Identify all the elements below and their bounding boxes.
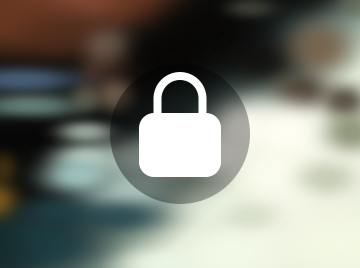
- button[interactable]: Content hidden: [0, 0, 360, 268]
